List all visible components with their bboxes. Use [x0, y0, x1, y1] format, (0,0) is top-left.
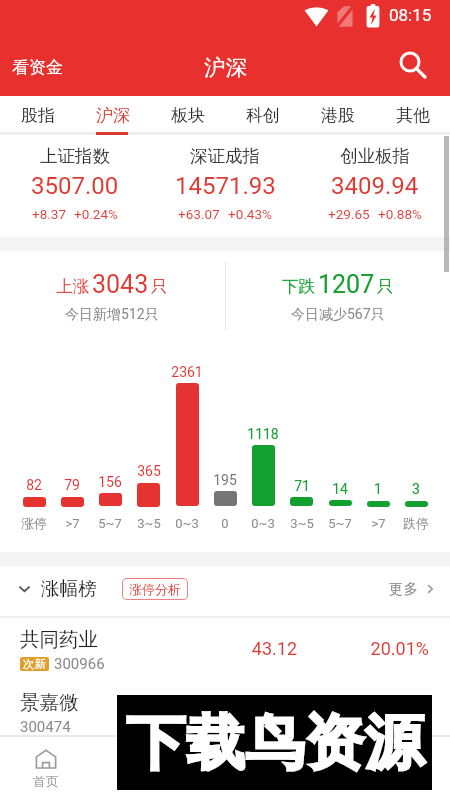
staticText: 3 [412, 481, 420, 497]
staticText: 43.12 [251, 638, 297, 659]
staticText: 科创 [246, 105, 280, 126]
staticText: 14571.93 [175, 172, 276, 200]
staticText: 1118 [247, 426, 279, 442]
button[interactable]: 行情 [112, 735, 224, 800]
staticText: 1207 [318, 270, 375, 299]
button[interactable]: 板块 [150, 96, 225, 134]
button[interactable]: 股指 [0, 96, 75, 134]
staticText: >7 [371, 516, 386, 531]
staticText: 下载鸟资源 [126, 706, 424, 780]
staticText: 次新 [23, 657, 46, 671]
button[interactable]: 共同药业 [0, 617, 450, 680]
staticText: 82 [26, 477, 42, 493]
staticText: 3409.94 [331, 172, 419, 200]
staticText: 3~5 [290, 516, 314, 531]
staticText: 跌停 [403, 515, 429, 531]
staticText: 12.80 [251, 701, 297, 722]
staticText: +8.37 [32, 206, 66, 222]
button[interactable]: 交易 [224, 735, 337, 800]
staticText: 港股 [321, 105, 355, 126]
staticText: 71 [294, 478, 310, 494]
staticText: 14 [332, 481, 348, 497]
staticText: 只 [377, 276, 394, 297]
staticText: 79 [64, 477, 80, 493]
staticText: 20.01% [370, 638, 429, 659]
staticText: 下跌 [282, 276, 315, 297]
staticText: 涨停 [21, 515, 47, 531]
staticText: 2361 [171, 364, 203, 380]
staticText: 只 [151, 276, 168, 297]
button[interactable]: 涨停分析 [122, 578, 188, 600]
staticText: 08:15 [389, 5, 432, 25]
button[interactable]: 景嘉微 [0, 680, 450, 743]
staticText: 沪深 [96, 105, 130, 126]
button[interactable]: 涨幅榜 [0, 571, 103, 606]
staticText: >7 [65, 516, 80, 531]
button[interactable]: 上涨 [2, 256, 222, 336]
staticText: 景嘉微 [20, 690, 79, 715]
staticText: 195 [213, 472, 237, 488]
staticText: 板块 [171, 105, 205, 126]
button[interactable]: Search [386, 38, 434, 96]
button[interactable]: 首页 [0, 735, 112, 800]
button[interactable]: 港股 [300, 96, 375, 134]
button[interactable]: 我的 [337, 735, 450, 800]
staticText: 365 [137, 463, 161, 479]
staticText: +29.65 [328, 206, 370, 222]
button[interactable]: 其他 [375, 96, 450, 134]
staticText: 0~3 [251, 516, 275, 531]
button[interactable]: 沪深 [75, 96, 150, 134]
button[interactable]: 上证指数 [1, 136, 149, 232]
staticText: 上证指数 [40, 145, 110, 167]
staticText: 300966 [54, 655, 105, 673]
staticText: +0.43% [228, 206, 272, 222]
staticText: 0 [221, 516, 229, 531]
staticText: 1 [374, 481, 382, 497]
staticText: 5~7 [98, 516, 122, 531]
button[interactable]: 创业板指 [301, 136, 449, 232]
staticText: 3043 [92, 270, 149, 299]
staticText: 涨幅榜 [41, 577, 97, 600]
staticText: +63.07 [178, 206, 220, 222]
button[interactable]: 科创 [225, 96, 300, 134]
staticText: 3507.00 [31, 172, 119, 200]
staticText: 创业板指 [340, 145, 410, 167]
button[interactable]: 更多 [381, 572, 450, 606]
staticText: 股指 [21, 105, 55, 126]
staticText: 0~3 [175, 516, 199, 531]
staticText: +0.88% [378, 206, 422, 222]
staticText: 5~7 [328, 516, 352, 531]
staticText: 更多 [389, 580, 418, 598]
staticText: 看资金 [12, 57, 63, 78]
staticText: 今日减少567只 [291, 306, 385, 324]
button[interactable]: 深证成指 [151, 136, 299, 232]
staticText: 19.96% [370, 701, 429, 722]
staticText: 其他 [396, 105, 430, 126]
staticText: 共同药业 [20, 627, 98, 652]
staticText: 沪深 [204, 54, 247, 81]
staticText: 300474 [20, 718, 71, 736]
staticText: 今日新增512只 [65, 306, 159, 324]
button[interactable]: 下跌 [228, 256, 448, 336]
staticText: 涨停分析 [129, 581, 181, 597]
staticText: +0.24% [74, 206, 118, 222]
button[interactable]: 看资金 [0, 49, 75, 86]
staticText: 深证成指 [190, 145, 260, 167]
staticText: 156 [98, 474, 122, 490]
staticText: 上涨 [56, 276, 89, 297]
staticText: 3~5 [137, 516, 161, 531]
staticText: 首页 [33, 773, 59, 789]
